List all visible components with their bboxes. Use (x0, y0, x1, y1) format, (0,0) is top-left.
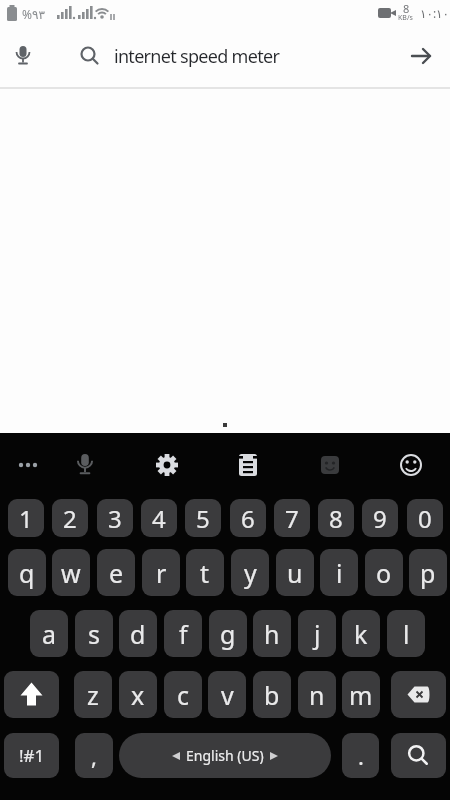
staticText: t (200, 556, 210, 590)
staticText: s (88, 617, 100, 651)
button[interactable]: g (209, 610, 247, 657)
button[interactable]: 5 (185, 499, 221, 537)
staticText: a (42, 617, 57, 651)
staticText: 9 (373, 502, 387, 535)
button[interactable]: . (342, 733, 379, 778)
button[interactable]: 9 (362, 499, 398, 537)
button[interactable]: a (30, 610, 68, 657)
staticText: 8 (403, 1, 410, 16)
staticText: f (179, 617, 188, 651)
button[interactable]: j (298, 610, 336, 657)
staticText: v (221, 678, 234, 712)
button[interactable]: z (74, 671, 112, 718)
staticText: 4 (152, 502, 166, 535)
button[interactable]: v (208, 671, 246, 718)
button[interactable]: o (365, 549, 403, 596)
staticText: d (130, 617, 146, 651)
staticText: w (61, 556, 81, 590)
staticText: 2 (63, 502, 77, 535)
staticText: y (244, 556, 257, 590)
button[interactable] (391, 733, 446, 778)
staticText: o (376, 556, 392, 590)
button[interactable]: 2 (52, 499, 88, 537)
staticText: k (354, 617, 368, 651)
staticText: , (91, 741, 97, 771)
staticText: . (358, 741, 364, 771)
button[interactable]: t (186, 549, 224, 596)
staticText: 6 (241, 502, 255, 535)
button[interactable]: i (320, 549, 358, 596)
button[interactable]: English (US) (119, 733, 331, 778)
button[interactable]: h (253, 610, 291, 657)
staticText: 3 (108, 502, 122, 535)
staticText: g (220, 617, 236, 651)
staticText: i (336, 556, 343, 590)
button[interactable]: , (75, 733, 113, 778)
button[interactable]: 4 (141, 499, 177, 537)
button[interactable]: l (387, 610, 425, 657)
button[interactable]: k (342, 610, 380, 657)
staticText: b (264, 678, 280, 712)
button[interactable]: s (75, 610, 113, 657)
staticText: !#1 (19, 744, 45, 767)
staticText: e (109, 556, 124, 590)
button[interactable]: 3 (97, 499, 133, 537)
staticText: %٩٣ (22, 6, 45, 22)
staticText: l (403, 617, 410, 651)
staticText: p (420, 556, 436, 590)
button[interactable]: q (8, 549, 46, 596)
button[interactable]: 8 (318, 499, 354, 537)
staticText: r (156, 556, 167, 590)
button[interactable]: c (164, 671, 202, 718)
button[interactable]: e (97, 549, 135, 596)
button[interactable]: internet speed meter (0, 26, 450, 87)
staticText: 7 (285, 502, 299, 535)
button[interactable]: w (52, 549, 90, 596)
staticText: 1 (19, 502, 33, 535)
staticText: x (131, 678, 145, 712)
button[interactable]: 1 (8, 499, 44, 537)
button[interactable]: b (253, 671, 291, 718)
staticText: c (177, 678, 190, 712)
button[interactable]: u (276, 549, 314, 596)
button[interactable]: !#1 (4, 733, 59, 778)
button[interactable]: d (119, 610, 157, 657)
staticText: 5 (196, 502, 210, 535)
staticText: u (287, 556, 303, 590)
button[interactable] (391, 671, 446, 718)
staticText: 8 (329, 502, 343, 535)
staticText: 0 (418, 502, 432, 535)
staticText: KB/s (398, 13, 413, 23)
staticText: m (349, 678, 373, 712)
button[interactable]: 7 (274, 499, 310, 537)
button[interactable]: m (342, 671, 380, 718)
staticText: z (87, 678, 99, 712)
button[interactable]: x (119, 671, 157, 718)
button[interactable]: f (164, 610, 202, 657)
button[interactable]: n (298, 671, 336, 718)
staticText: q (19, 556, 35, 590)
staticText: English (US) (186, 746, 264, 765)
button[interactable] (4, 671, 59, 718)
staticText: j (314, 617, 321, 651)
button[interactable]: r (142, 549, 180, 596)
staticText: h (264, 617, 280, 651)
staticText: internet speed meter (114, 44, 280, 69)
button[interactable]: 6 (230, 499, 266, 537)
button[interactable]: 0 (407, 499, 443, 537)
staticText: ١٠:١٠ (420, 5, 449, 21)
button[interactable]: y (231, 549, 269, 596)
staticText: n (309, 678, 325, 712)
button[interactable]: p (409, 549, 447, 596)
